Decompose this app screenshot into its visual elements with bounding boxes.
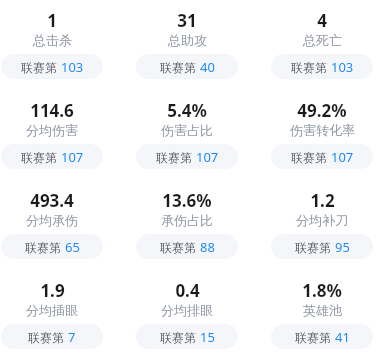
staticText: 分均承伤 [26, 212, 78, 228]
staticText: 伤害占比 [161, 122, 213, 138]
button[interactable]: 5.4% [136, 90, 238, 180]
staticText: 107 [61, 148, 84, 166]
staticText: 31 [177, 9, 197, 32]
button[interactable]: 13.6% [136, 180, 238, 270]
staticText: 107 [331, 148, 354, 166]
staticText: 5.4% [167, 99, 207, 122]
staticText: 总助攻 [168, 32, 207, 48]
staticText: 联赛第 [156, 150, 192, 165]
staticText: 联赛第 [160, 330, 196, 345]
staticText: 1.2 [310, 189, 335, 212]
button[interactable]: 1.9 [1, 270, 103, 360]
staticText: 分均排眼 [161, 302, 213, 318]
staticText: 7 [68, 328, 76, 346]
staticText: 1.9 [40, 279, 65, 302]
staticText: 联赛第 [291, 60, 327, 75]
button[interactable]: 1.8% [271, 270, 373, 360]
button[interactable]: 4 [271, 0, 373, 90]
staticText: 493.4 [30, 189, 74, 212]
staticText: 联赛第 [160, 240, 196, 255]
staticText: 88 [200, 238, 215, 256]
staticText: 伤害转化率 [290, 122, 355, 138]
staticText: 13.6% [162, 189, 212, 212]
button[interactable]: 114.6 [1, 90, 103, 180]
staticText: 联赛第 [28, 330, 64, 345]
staticText: 103 [331, 58, 354, 76]
staticText: 总击杀 [33, 32, 72, 48]
button[interactable]: 493.4 [1, 180, 103, 270]
staticText: 103 [61, 58, 84, 76]
staticText: 英雄池 [303, 302, 342, 318]
staticText: 1 [47, 9, 57, 32]
staticText: 4 [317, 9, 327, 32]
staticText: 分均补刀 [296, 212, 348, 228]
staticText: 联赛第 [25, 240, 61, 255]
staticText: 114.6 [30, 99, 74, 122]
staticText: 联赛第 [291, 150, 327, 165]
staticText: 联赛第 [295, 330, 331, 345]
staticText: 40 [200, 58, 215, 76]
staticText: 15 [200, 328, 215, 346]
button[interactable]: 31 [136, 0, 238, 90]
staticText: 65 [65, 238, 80, 256]
button[interactable]: 1 [1, 0, 103, 90]
staticText: 分均插眼 [26, 302, 78, 318]
staticText: 承伤占比 [161, 212, 213, 228]
staticText: 1.8% [302, 279, 342, 302]
staticText: 49.2% [297, 99, 347, 122]
staticText: 总死亡 [303, 32, 342, 48]
staticText: 107 [196, 148, 219, 166]
staticText: 95 [335, 238, 350, 256]
staticText: 41 [335, 328, 350, 346]
staticText: 联赛第 [21, 150, 57, 165]
button[interactable]: 1.2 [271, 180, 373, 270]
button[interactable]: 49.2% [271, 90, 373, 180]
staticText: 0.4 [175, 279, 200, 302]
staticText: 联赛第 [160, 60, 196, 75]
staticText: 联赛第 [21, 60, 57, 75]
staticText: 联赛第 [295, 240, 331, 255]
staticText: 分均伤害 [26, 122, 78, 138]
button[interactable]: 0.4 [136, 270, 238, 360]
